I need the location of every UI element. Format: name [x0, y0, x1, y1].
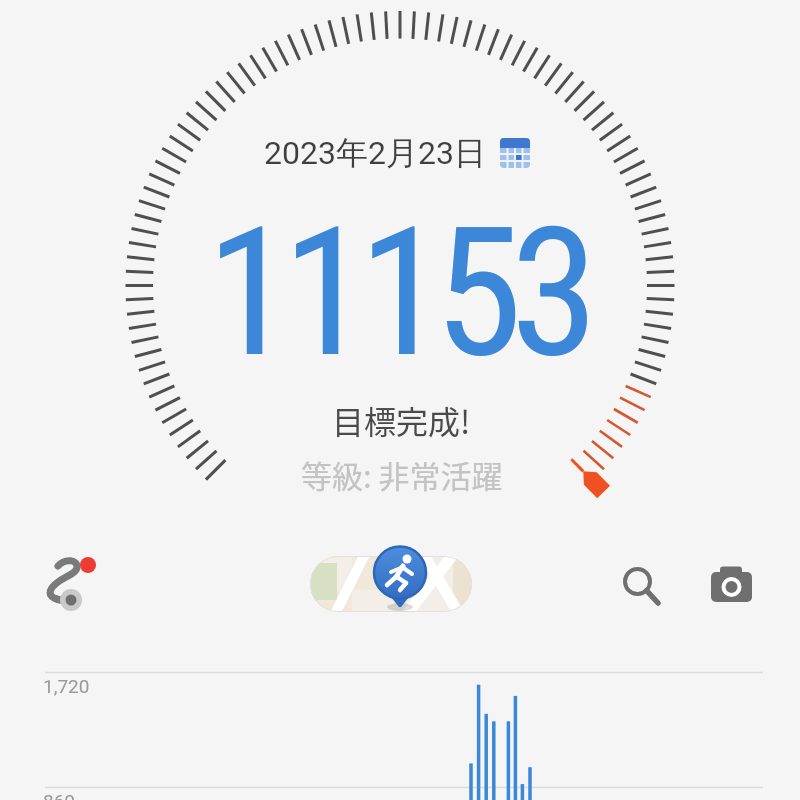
staticText: 11153	[206, 188, 587, 398]
staticText: 2023年2月23日	[264, 133, 486, 173]
staticText: 1,720	[43, 675, 90, 697]
button[interactable]	[702, 558, 758, 608]
staticText: 等級: 非常活躍	[301, 452, 503, 497]
button[interactable]: 2023年2月23日	[264, 133, 530, 173]
button[interactable]	[310, 556, 472, 612]
staticText: 目標完成!	[332, 397, 471, 443]
staticText: 860	[43, 790, 76, 800]
button[interactable]	[612, 558, 664, 608]
button[interactable]	[40, 552, 106, 614]
